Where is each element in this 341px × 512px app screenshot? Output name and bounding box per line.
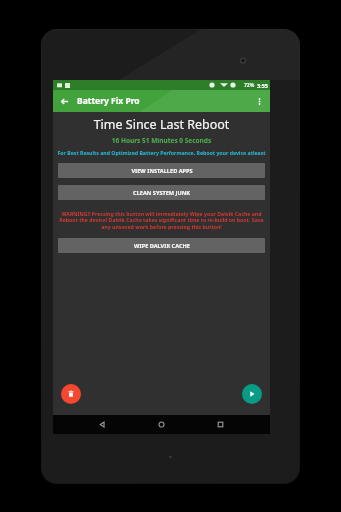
button[interactable]: Back — [93, 415, 112, 434]
button[interactable]: VIEW INSTALLED APPS — [58, 163, 265, 178]
staticText: 72% — [244, 82, 255, 89]
button[interactable]: Delete — [61, 384, 81, 404]
staticText: CLEAN SYSTEM JUNK — [133, 189, 190, 197]
staticText: 16 Hours 51 Minutes 0 Seconds — [53, 136, 270, 145]
button[interactable]: WIPE DALVIK CACHE — [58, 238, 265, 253]
staticText: Battery Fix Pro — [77, 95, 140, 107]
staticText: For Best Results and Optimized Battery P… — [56, 149, 267, 156]
button[interactable]: Start — [242, 384, 262, 404]
button[interactable]: CLEAN SYSTEM JUNK — [58, 185, 265, 200]
staticText: Time Since Last Reboot — [53, 116, 270, 133]
staticText: VIEW INSTALLED APPS — [131, 167, 193, 175]
staticText: WIPE DALVIK CACHE — [134, 242, 190, 250]
button[interactable]: Home — [152, 415, 171, 434]
button[interactable]: Recent apps — [211, 415, 230, 434]
staticText: WARNING!! Pressing this button will imme… — [59, 210, 264, 231]
staticText: 3:55 — [257, 82, 268, 89]
button[interactable]: More options — [248, 90, 270, 112]
button[interactable]: Back — [53, 90, 75, 112]
